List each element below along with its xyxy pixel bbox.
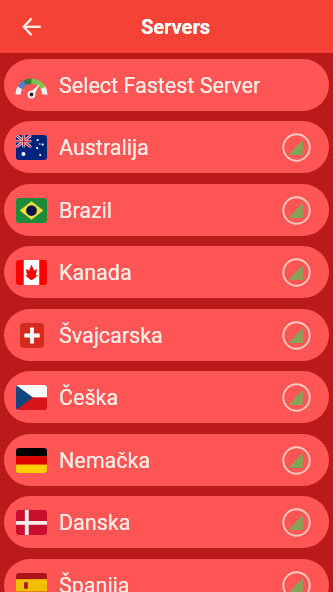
staticText: Švajcarska xyxy=(59,323,163,348)
button[interactable]: Australija xyxy=(4,121,329,173)
staticText: Danska xyxy=(59,510,131,535)
button[interactable]: Back xyxy=(8,5,52,49)
button[interactable]: Nemačka xyxy=(4,434,329,486)
staticText: Australija xyxy=(59,135,149,160)
button[interactable]: Švajcarska xyxy=(4,309,329,361)
staticText: Servers xyxy=(141,15,211,38)
button[interactable]: Kanada xyxy=(4,246,329,298)
button[interactable]: Danska xyxy=(4,496,329,548)
button[interactable]: Češka xyxy=(4,371,329,423)
staticText: Nemačka xyxy=(59,448,151,473)
button[interactable]: Select Fastest Server xyxy=(4,59,329,111)
staticText: Brazil xyxy=(59,198,113,223)
staticText: Španija xyxy=(59,573,130,592)
button[interactable]: Španija xyxy=(4,559,329,592)
staticText: Češka xyxy=(59,385,119,410)
staticText: Select Fastest Server xyxy=(59,73,261,98)
button[interactable]: Brazil xyxy=(4,184,329,236)
staticText: Kanada xyxy=(59,260,132,285)
